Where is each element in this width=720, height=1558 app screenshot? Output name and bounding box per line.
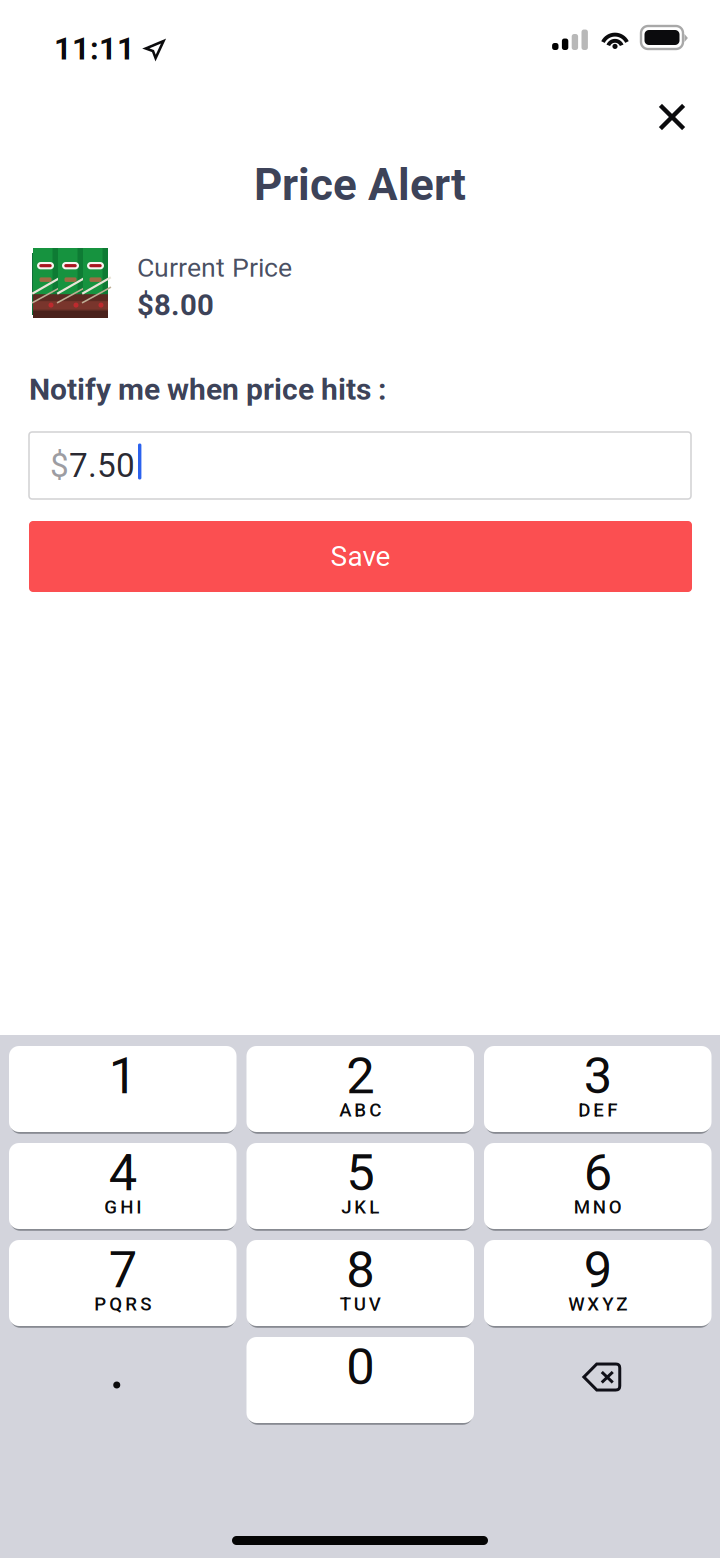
staticText: ABC	[339, 1099, 381, 1121]
staticText: 6	[584, 1143, 612, 1203]
staticText: 8	[346, 1240, 374, 1300]
button[interactable]: Decimal point	[9, 1336, 236, 1424]
staticText: 5	[346, 1143, 374, 1203]
staticText: GHI	[104, 1196, 141, 1218]
staticText: WXYZ	[568, 1293, 627, 1315]
button[interactable]: Save	[29, 521, 692, 592]
button[interactable]: 7	[9, 1239, 236, 1327]
button[interactable]: 6	[484, 1142, 711, 1230]
staticText: 9	[584, 1240, 612, 1300]
button[interactable]: 4	[9, 1142, 236, 1230]
staticText: 3	[584, 1046, 612, 1106]
staticText: JKL	[341, 1196, 379, 1218]
staticText: 11:11	[54, 31, 135, 67]
staticText: 2	[346, 1046, 374, 1106]
button[interactable]: 1	[9, 1045, 236, 1133]
button[interactable]: 0	[246, 1336, 474, 1424]
staticText: $8.00	[137, 288, 214, 322]
staticText: 0	[346, 1337, 374, 1397]
staticText: Notify me when price hits :	[29, 372, 386, 407]
button[interactable]: 8	[246, 1239, 474, 1327]
staticText: TUV	[340, 1293, 381, 1315]
staticText: 7.50	[69, 446, 135, 485]
staticText: $	[50, 446, 69, 485]
staticText: MNO	[574, 1196, 622, 1218]
staticText: Price Alert	[254, 159, 466, 211]
staticText: Save	[330, 540, 390, 573]
staticText: Current Price	[137, 252, 292, 283]
staticText: 4	[109, 1143, 137, 1203]
staticText: DEF	[578, 1099, 617, 1121]
button[interactable]: Close	[644, 89, 700, 145]
button[interactable]: 5	[246, 1142, 474, 1230]
staticText: PQRS	[94, 1293, 151, 1315]
button[interactable]: 9	[484, 1239, 711, 1327]
button[interactable]: 3	[484, 1045, 711, 1133]
staticText: 1	[109, 1046, 137, 1106]
staticText: 7	[109, 1240, 137, 1300]
button[interactable]: Delete	[484, 1336, 711, 1424]
button[interactable]: 2	[246, 1045, 474, 1133]
